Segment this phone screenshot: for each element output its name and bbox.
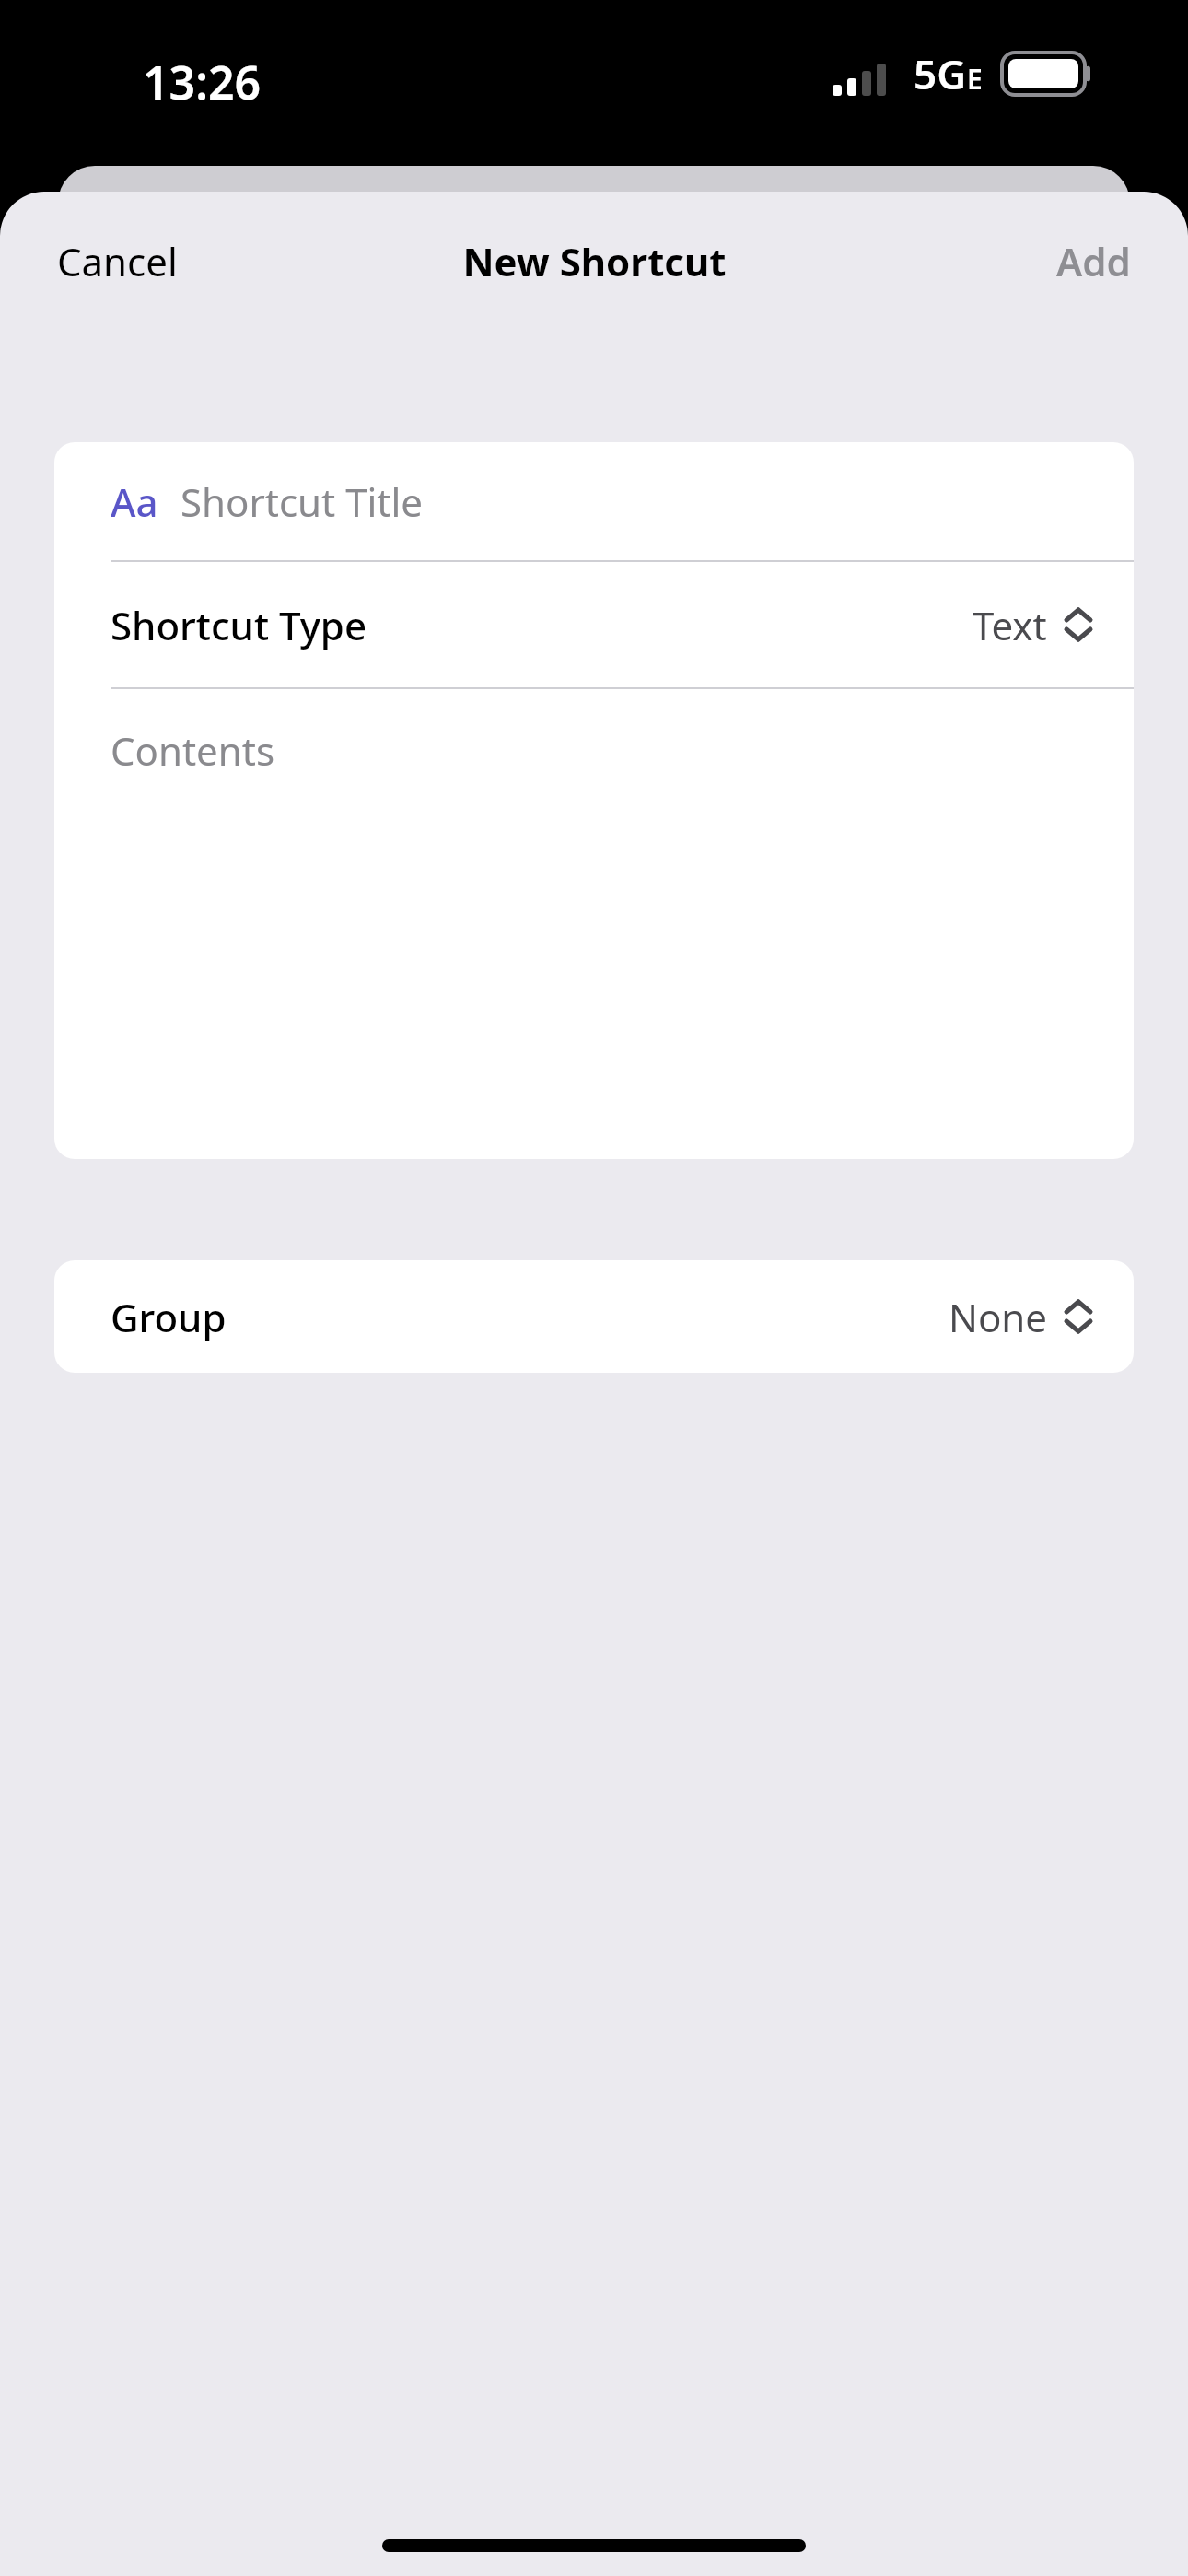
button[interactable]: Add xyxy=(1027,220,1160,302)
staticText: 13:26 xyxy=(143,51,262,113)
staticText: Shortcut Type xyxy=(111,599,367,651)
button[interactable]: Aa xyxy=(54,442,1134,560)
staticText: Group xyxy=(111,1291,227,1343)
staticText: Cancel xyxy=(57,235,178,287)
staticText: Aa xyxy=(111,475,158,528)
staticText: Text xyxy=(973,599,1047,651)
staticText: Shortcut Title xyxy=(181,475,424,528)
button[interactable]: Group xyxy=(54,1260,1134,1373)
button[interactable]: Shortcut Type xyxy=(54,562,1134,687)
staticText: New Shortcut xyxy=(462,235,727,287)
staticText: Add xyxy=(1056,235,1131,287)
button[interactable]: Cancel xyxy=(28,220,207,302)
other: Change selection xyxy=(1060,1294,1097,1339)
staticText: None xyxy=(949,1291,1047,1343)
staticText: Contents xyxy=(111,724,274,777)
button[interactable]: Contents xyxy=(54,689,1134,1159)
staticText: 5G xyxy=(914,46,967,101)
other: Change selection xyxy=(1060,603,1097,647)
staticText: E xyxy=(967,60,983,98)
